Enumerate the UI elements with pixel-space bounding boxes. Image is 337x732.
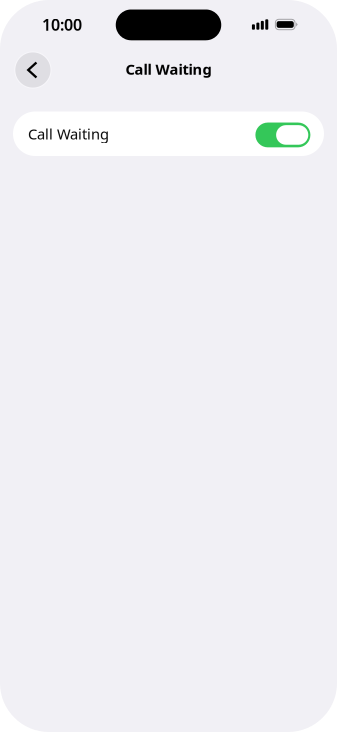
staticText: Call Waiting (28, 124, 109, 143)
staticText: 10:00 (42, 14, 82, 35)
button[interactable]: Call Waiting (13, 111, 324, 156)
staticText: Call Waiting (125, 59, 211, 79)
button[interactable]: Back (14, 51, 51, 89)
